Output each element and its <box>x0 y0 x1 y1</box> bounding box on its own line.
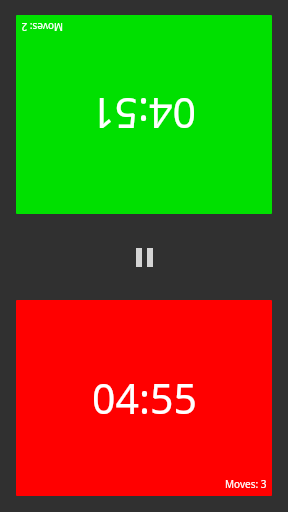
staticText: Moves: 3 <box>225 477 267 491</box>
button[interactable]: 04:51 <box>16 15 272 214</box>
staticText: Moves: 2 <box>21 20 63 34</box>
button[interactable]: Pause <box>124 240 164 274</box>
staticText: 04:55 <box>92 370 197 426</box>
staticText: 04:51 <box>91 86 196 142</box>
button[interactable]: 04:55 <box>16 300 272 496</box>
